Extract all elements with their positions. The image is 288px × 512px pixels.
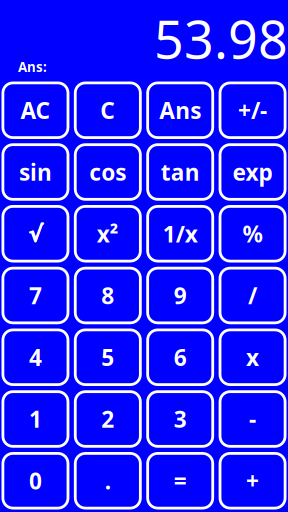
staticText: cos (89, 157, 126, 187)
button[interactable]: √ (1, 205, 69, 262)
button[interactable]: + (219, 452, 286, 509)
button[interactable]: 5 (74, 328, 142, 386)
staticText: x² (97, 219, 119, 249)
staticText: 0 (29, 466, 42, 496)
button[interactable]: 1 (1, 390, 69, 448)
staticText: √ (29, 221, 44, 247)
staticText: +/- (238, 95, 267, 125)
staticText: tan (161, 157, 200, 187)
staticText: 8 (101, 280, 114, 310)
staticText: % (243, 219, 263, 249)
staticText: 2 (101, 404, 114, 434)
button[interactable]: x (219, 328, 286, 386)
button[interactable]: 3 (146, 390, 214, 448)
staticText: √ (28, 221, 43, 247)
staticText: 1/x (163, 219, 198, 249)
staticText: + (246, 466, 259, 496)
button[interactable]: cos (74, 143, 142, 201)
staticText: √ (28, 221, 43, 247)
button[interactable]: % (219, 205, 286, 262)
staticText: Ans: (18, 58, 47, 76)
button[interactable]: . (74, 452, 142, 509)
button[interactable]: 0 (1, 452, 69, 509)
staticText: Ans (159, 95, 201, 125)
staticText: 3 (174, 404, 187, 434)
staticText: 1 (29, 404, 42, 434)
button[interactable]: 2 (74, 390, 142, 448)
staticText: 4 (29, 342, 42, 372)
button[interactable]: / (219, 267, 286, 324)
staticText: sin (19, 157, 52, 187)
staticText: AC (20, 95, 50, 125)
staticText: exp (233, 157, 273, 187)
button[interactable]: tan (146, 143, 214, 201)
button[interactable]: Ans (146, 81, 214, 139)
button[interactable]: sin (1, 143, 69, 201)
staticText: - (249, 404, 256, 434)
button[interactable]: exp (219, 143, 286, 201)
button[interactable]: x² (74, 205, 142, 262)
staticText: / (248, 280, 257, 310)
button[interactable]: = (146, 452, 214, 509)
staticText: 7 (29, 280, 42, 310)
button[interactable]: AC (1, 81, 69, 139)
staticText: = (174, 466, 187, 496)
staticText: 6 (174, 342, 187, 372)
button[interactable]: 6 (146, 328, 214, 386)
button[interactable]: 8 (74, 267, 142, 324)
staticText: 53.98 (154, 4, 288, 73)
staticText: C (100, 95, 115, 125)
button[interactable]: - (219, 390, 286, 448)
staticText: 9 (174, 280, 187, 310)
button[interactable]: 4 (1, 328, 69, 386)
staticText: x (246, 342, 259, 372)
staticText: 5 (101, 342, 114, 372)
button[interactable]: +/- (219, 81, 286, 139)
button[interactable]: 9 (146, 267, 214, 324)
staticText: . (105, 466, 111, 496)
button[interactable]: 7 (1, 267, 69, 324)
button[interactable]: 1/x (146, 205, 214, 262)
button[interactable]: C (74, 81, 142, 139)
